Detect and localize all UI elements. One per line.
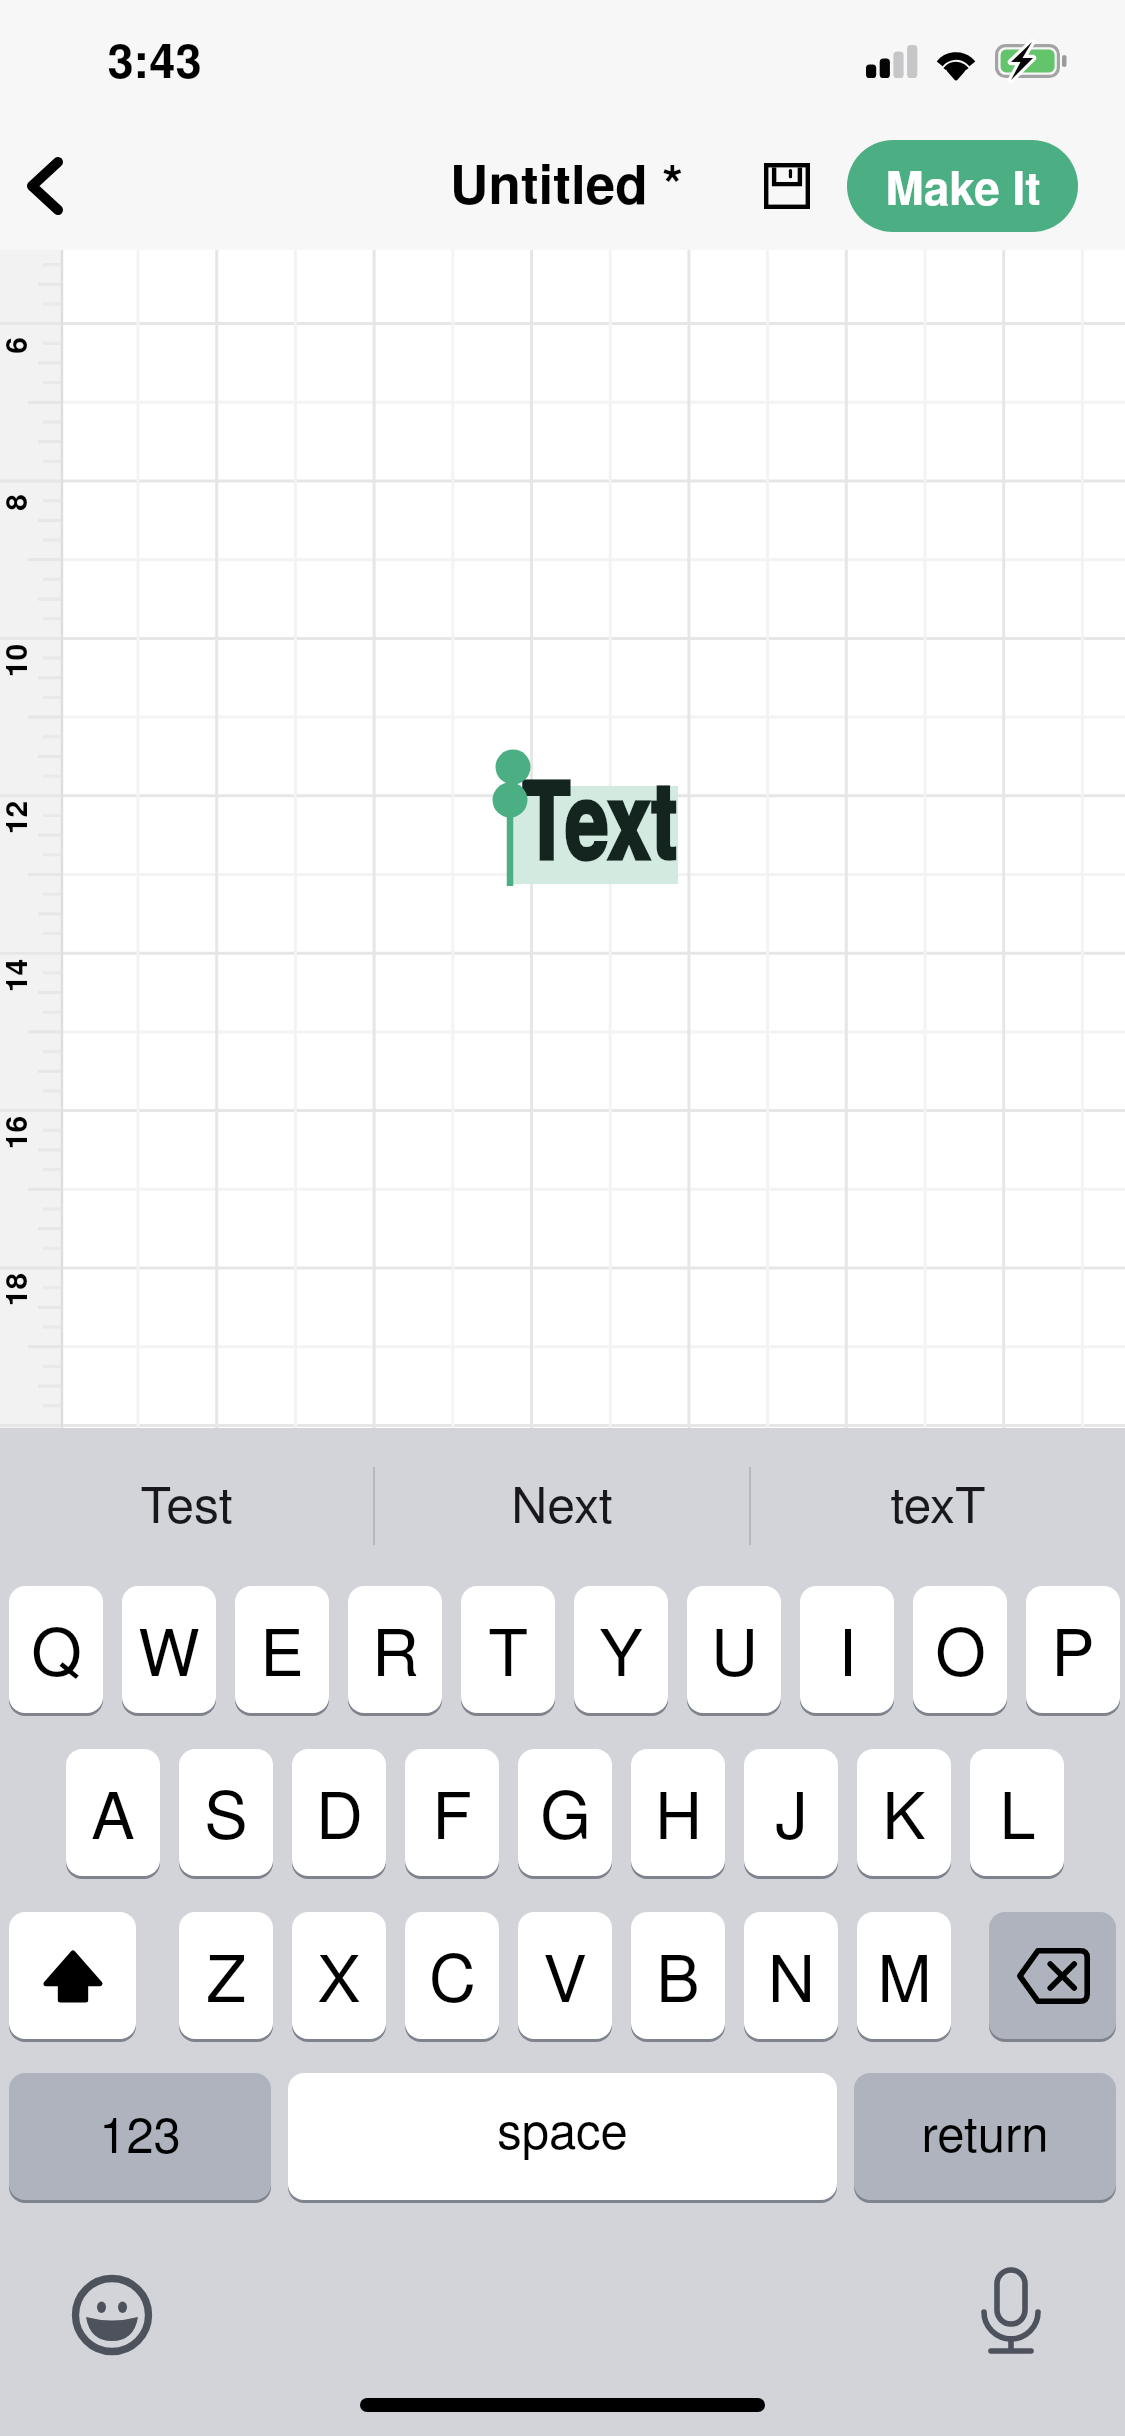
staticText: 123 — [99, 2097, 181, 2167]
staticText: 14 — [0, 958, 35, 992]
button[interactable]: Emoji keyboard — [68, 2271, 156, 2359]
button[interactable]: K — [857, 1749, 951, 1876]
button[interactable]: Backspace — [989, 1912, 1116, 2039]
staticText: W — [138, 1601, 200, 1694]
staticText: N — [768, 1927, 815, 2020]
staticText: V — [543, 1927, 587, 2020]
button[interactable]: O — [913, 1586, 1007, 1713]
button[interactable]: 123 — [9, 2073, 271, 2200]
button[interactable]: E — [235, 1586, 329, 1713]
staticText: L — [999, 1764, 1036, 1857]
button[interactable]: T — [461, 1586, 555, 1713]
button[interactable]: P — [1026, 1586, 1120, 1713]
button[interactable]: I — [800, 1586, 894, 1713]
staticText: E — [260, 1601, 304, 1694]
button[interactable]: R — [348, 1586, 442, 1713]
staticText: D — [316, 1764, 363, 1857]
staticText: J — [775, 1764, 808, 1857]
button[interactable]: X — [292, 1912, 386, 2039]
staticText: 3:43 — [107, 25, 202, 92]
button[interactable]: V — [518, 1912, 612, 2039]
staticText: T — [488, 1601, 528, 1694]
button[interactable]: return — [854, 2073, 1116, 2200]
staticText: S — [204, 1764, 248, 1857]
staticText: Text — [522, 739, 678, 891]
staticText: R — [372, 1601, 419, 1694]
staticText: Test — [140, 1466, 233, 1538]
button[interactable]: W — [122, 1586, 216, 1713]
staticText: M — [877, 1927, 932, 2020]
staticText: 10 — [0, 643, 35, 677]
button[interactable]: Shift — [9, 1912, 136, 2039]
staticText: 8 — [0, 494, 36, 511]
button[interactable]: D — [292, 1749, 386, 1876]
button[interactable]: Back — [0, 126, 103, 246]
button[interactable]: Next — [375, 1463, 749, 1541]
staticText: G — [540, 1764, 591, 1857]
staticText: I — [838, 1601, 857, 1694]
button[interactable]: G — [518, 1749, 612, 1876]
staticText: Q — [31, 1601, 82, 1694]
staticText: 18 — [0, 1272, 35, 1306]
staticText: C — [429, 1927, 476, 2020]
button[interactable]: Dictation — [980, 2265, 1042, 2357]
button[interactable]: Q — [9, 1586, 103, 1713]
button[interactable]: space — [288, 2073, 837, 2200]
staticText: F — [432, 1764, 472, 1857]
staticText: return — [921, 2096, 1049, 2166]
button[interactable]: M — [857, 1912, 951, 2039]
staticText: P — [1051, 1601, 1095, 1694]
button[interactable]: C — [405, 1912, 499, 2039]
staticText: B — [656, 1927, 700, 2020]
button[interactable]: Save — [741, 124, 833, 248]
staticText: A — [91, 1764, 135, 1857]
staticText: Y — [599, 1601, 643, 1694]
staticText: U — [711, 1601, 758, 1694]
button[interactable]: H — [631, 1749, 725, 1876]
staticText: X — [317, 1927, 361, 2020]
button[interactable]: Y — [574, 1586, 668, 1713]
staticText: Untitled * — [450, 144, 683, 220]
button[interactable]: Z — [179, 1912, 273, 2039]
button[interactable]: Make It — [847, 140, 1078, 232]
staticText: 12 — [0, 800, 35, 834]
button[interactable]: A — [66, 1749, 160, 1876]
button[interactable]: Test — [0, 1463, 373, 1541]
button[interactable]: B — [631, 1912, 725, 2039]
button[interactable]: S — [179, 1749, 273, 1876]
staticText: H — [655, 1764, 702, 1857]
button[interactable]: L — [970, 1749, 1064, 1876]
staticText: 16 — [0, 1115, 35, 1149]
button[interactable]: U — [687, 1586, 781, 1713]
staticText: 6 — [0, 337, 36, 354]
staticText: Next — [511, 1466, 613, 1538]
button[interactable]: texT — [751, 1463, 1125, 1541]
staticText: Z — [206, 1927, 246, 2020]
staticText: space — [497, 2093, 628, 2163]
staticText: K — [882, 1764, 926, 1857]
staticText: O — [935, 1601, 986, 1694]
button[interactable]: N — [744, 1912, 838, 2039]
button[interactable]: F — [405, 1749, 499, 1876]
staticText: texT — [890, 1466, 986, 1538]
staticText: Make It — [885, 153, 1041, 219]
button[interactable]: J — [744, 1749, 838, 1876]
